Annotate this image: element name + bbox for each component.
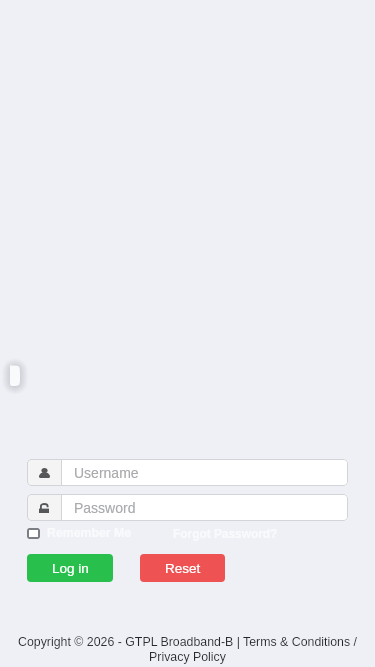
button[interactable]: Forgot Password? bbox=[173, 527, 278, 540]
staticText: Remember Me bbox=[47, 526, 132, 540]
staticText: Password bbox=[74, 500, 136, 516]
staticText: Log in bbox=[52, 561, 89, 576]
button[interactable]: Remember Me bbox=[27, 526, 132, 540]
staticText: Copyright © 2026 - GTPL Broadband-B | Te… bbox=[9, 635, 366, 663]
staticText: Forgot Password? bbox=[173, 527, 278, 540]
staticText: Username bbox=[74, 465, 139, 481]
button[interactable]: Username bbox=[27, 459, 348, 486]
button[interactable]: Reset bbox=[140, 554, 225, 582]
button[interactable]: Log in bbox=[27, 554, 113, 582]
staticText: Reset bbox=[165, 561, 201, 576]
button[interactable]: Password bbox=[27, 494, 348, 521]
